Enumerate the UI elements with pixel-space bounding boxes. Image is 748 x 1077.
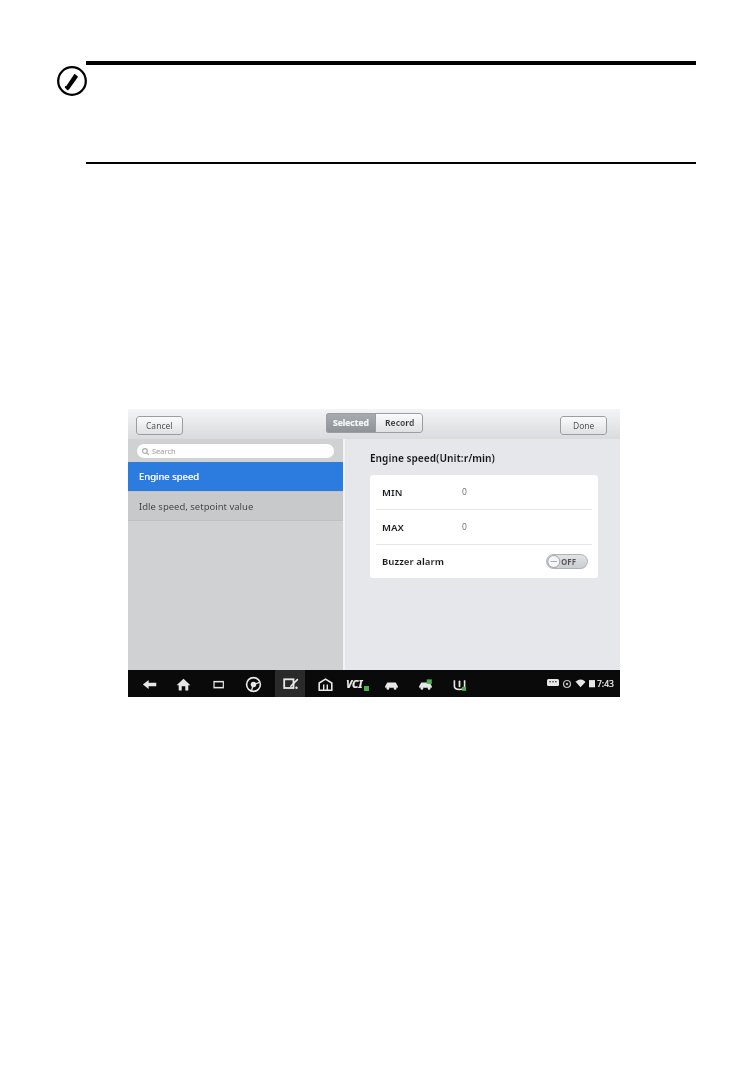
staticText: Done [573, 420, 595, 432]
staticText: Engine speed(Unit:r/min) [370, 451, 495, 465]
button[interactable]: Vehicle home [316, 675, 334, 693]
staticText: Search [152, 446, 176, 456]
button[interactable]: Car data [416, 675, 434, 693]
button[interactable]: MIN [370, 475, 598, 509]
other: Note [57, 66, 87, 96]
staticText: MAX [382, 521, 404, 534]
button[interactable]: Screenshot [275, 670, 305, 697]
button[interactable]: MAX [370, 510, 598, 544]
staticText: Selected [333, 417, 369, 429]
staticText: Cancel [146, 420, 173, 432]
staticText: VCI [346, 677, 363, 691]
button[interactable]: Record [376, 413, 423, 433]
button[interactable]: Buzzer alarm off [546, 554, 588, 569]
staticText: Buzzer alarm [382, 555, 444, 568]
button[interactable]: Search [137, 444, 334, 458]
button[interactable]: Home [174, 675, 192, 693]
staticText: Idle speed, setpoint value [139, 500, 254, 513]
button[interactable]: Cancel [136, 416, 183, 435]
button[interactable]: Car [382, 675, 400, 693]
button[interactable]: Engine speed [128, 462, 343, 491]
staticText: 0 [462, 521, 467, 533]
staticText: Record [385, 417, 415, 429]
button[interactable]: Selected [326, 413, 375, 433]
button[interactable]: VCI [346, 677, 369, 691]
button[interactable]: Recents [209, 675, 227, 693]
staticText: Engine speed [139, 470, 200, 483]
staticText: 0 [462, 486, 467, 498]
button[interactable]: Idle speed, setpoint value [128, 492, 343, 520]
button[interactable]: Back [140, 675, 158, 693]
button[interactable]: Done [560, 416, 607, 435]
staticText: OFF [561, 556, 577, 567]
button[interactable]: Alerts [450, 675, 468, 693]
staticText: MIN [382, 486, 403, 499]
button[interactable]: Browser [244, 675, 262, 693]
button[interactable]: Buzzer alarm [370, 545, 598, 578]
staticText: 7:43 [597, 678, 614, 690]
